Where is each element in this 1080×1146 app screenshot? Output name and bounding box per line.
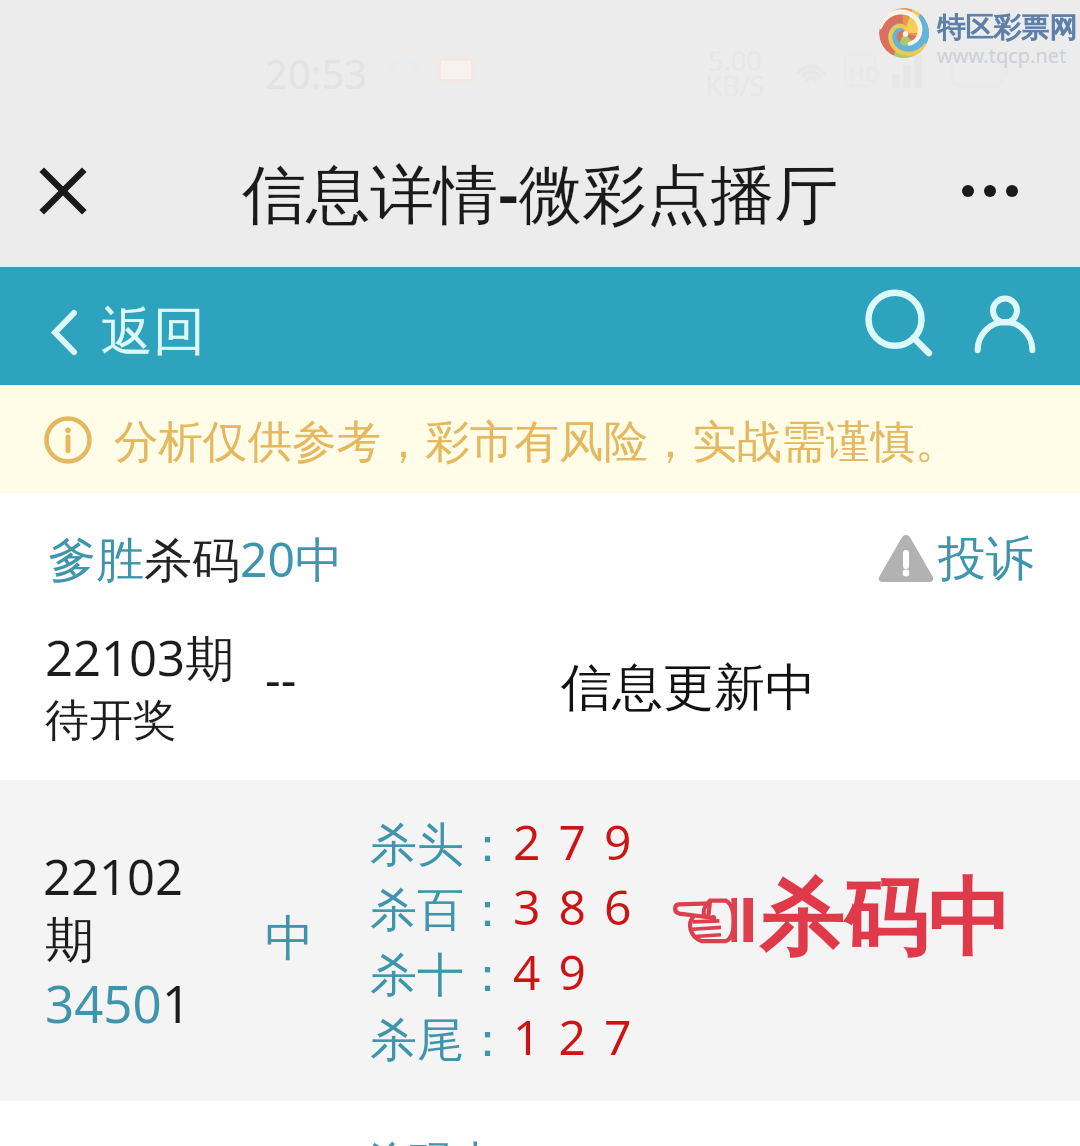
button[interactable] [0,493,1080,780]
staticText: 22103期 [45,624,235,691]
staticText: 杀十： [370,946,511,1005]
button[interactable] [0,780,1080,1101]
staticText: 投诉 [938,529,1034,589]
staticText: 返回 [101,299,205,365]
staticText: 34501 [45,968,191,1037]
button[interactable]: Account [960,280,1050,370]
staticText: 杀百： [370,881,511,940]
button[interactable]: More options [945,147,1035,235]
staticText: 信息详情-微彩点播厅 [242,149,839,236]
staticText: 279 [513,809,650,874]
staticText: 信息更新中 [561,656,816,720]
staticText: 期 [45,910,94,972]
staticText: 20:53 [265,46,368,100]
staticText: -- [265,645,297,712]
staticText: 爹胜杀码20中 [48,526,343,592]
staticText: 杀尾： [370,1011,511,1070]
staticText: 127 [513,1004,650,1069]
staticText: www.tqcp.net [937,42,1067,69]
staticText: 中 [265,908,314,970]
staticText: 386 [513,874,650,939]
button[interactable]: Search [850,280,940,370]
staticText: 杀头： [370,816,511,875]
staticText: 特区彩票网 [937,10,1077,45]
staticText: 22102 [43,843,184,910]
staticText: 49 [513,939,604,1004]
staticText: 杀码中 [362,1135,500,1146]
button[interactable]: Close [19,147,107,235]
staticText: 待开奖 [45,693,177,748]
staticText: 分析仅供参考，彩市有风险，实战需谨慎。 [114,414,960,470]
button[interactable]: 投诉 [878,519,1034,599]
button[interactable]: 返回 [52,287,205,377]
staticText: 杀码中 [759,866,1011,972]
